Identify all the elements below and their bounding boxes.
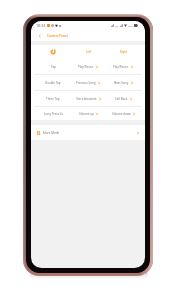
staticText: Call Back (115, 97, 128, 101)
button[interactable]: Voice Assistant (76, 91, 102, 106)
staticText: Double Tap (45, 81, 61, 85)
button[interactable]: Previous Song (76, 75, 101, 90)
staticText: Previous Song (76, 81, 96, 85)
staticText: Control Panel (47, 34, 68, 38)
button[interactable]: Play/Pause (113, 59, 134, 74)
staticText: Volume up (79, 112, 94, 116)
staticText: Right (120, 50, 128, 54)
staticText: More Mode (43, 131, 60, 135)
button[interactable]: Back (33, 30, 47, 41)
staticText: Next Song (114, 81, 129, 85)
button[interactable]: Reset (35, 45, 71, 59)
staticText: Three Tap (46, 97, 60, 101)
staticText: Tap (51, 65, 56, 69)
staticText: Long Press 2s (44, 112, 63, 116)
button[interactable]: More Mode (31, 125, 145, 140)
button[interactable]: Play/Pause (78, 59, 99, 74)
button[interactable]: Volume up (79, 107, 99, 120)
staticText: 18:33 (36, 23, 46, 28)
staticText: Voice Assistant (76, 97, 97, 101)
staticText: Left (86, 50, 92, 54)
staticText: 4G (115, 24, 119, 27)
staticText: Volume down (112, 112, 131, 116)
staticText: Play/Pause (113, 65, 129, 69)
staticText: Play/Pause (78, 65, 94, 69)
staticText: 95% (128, 24, 133, 27)
button[interactable]: Volume down (112, 107, 136, 120)
button[interactable]: Next Song (114, 75, 134, 90)
button[interactable]: Call Back (115, 91, 133, 106)
